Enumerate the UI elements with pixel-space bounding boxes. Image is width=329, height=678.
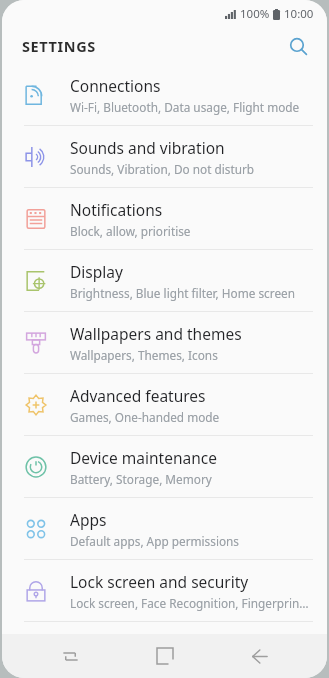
staticText: Wallpapers, Themes, Icons xyxy=(70,347,218,363)
staticText: Notifications xyxy=(70,199,163,220)
staticText: Display xyxy=(70,261,123,282)
button[interactable]: Connections xyxy=(2,64,327,126)
staticText: Connections xyxy=(70,75,161,96)
button[interactable]: Search xyxy=(281,29,315,63)
button[interactable]: Notifications xyxy=(2,188,327,250)
staticText: Device maintenance xyxy=(70,447,217,468)
button[interactable]: Apps xyxy=(2,498,327,560)
button[interactable]: Home xyxy=(139,634,191,678)
staticText: Lock screen and security xyxy=(70,571,249,592)
staticText: Apps xyxy=(70,509,107,530)
staticText: SETTINGS xyxy=(22,36,96,56)
staticText: Wi-Fi, Bluetooth, Data usage, Flight mod… xyxy=(70,99,300,115)
staticText: 10:00 xyxy=(284,6,314,22)
button[interactable]: Lock screen and security xyxy=(2,560,327,622)
staticText: Battery, Storage, Memory xyxy=(70,471,212,487)
staticText: Brightness, Blue light filter, Home scre… xyxy=(70,285,295,301)
button[interactable]: Recents xyxy=(44,634,96,678)
button[interactable]: Wallpapers and themes xyxy=(2,312,327,374)
staticText: Lock screen, Face Recognition, Fingerpri… xyxy=(70,595,309,611)
staticText: Games, One-handed mode xyxy=(70,409,220,425)
staticText: Advanced features xyxy=(70,385,206,406)
button[interactable]: Device maintenance xyxy=(2,436,327,498)
staticText: Wallpapers and themes xyxy=(70,323,242,344)
button[interactable]: Display xyxy=(2,250,327,312)
staticText: Sounds and vibration xyxy=(70,137,225,158)
button[interactable]: Sounds and vibration xyxy=(2,126,327,188)
staticText: Default apps, App permissions xyxy=(70,533,240,549)
button[interactable]: Advanced features xyxy=(2,374,327,436)
button[interactable]: Back xyxy=(233,634,285,678)
staticText: Sounds, Vibration, Do not disturb xyxy=(70,161,255,177)
staticText: 100% xyxy=(240,6,270,22)
staticText: Block, allow, prioritise xyxy=(70,223,191,239)
